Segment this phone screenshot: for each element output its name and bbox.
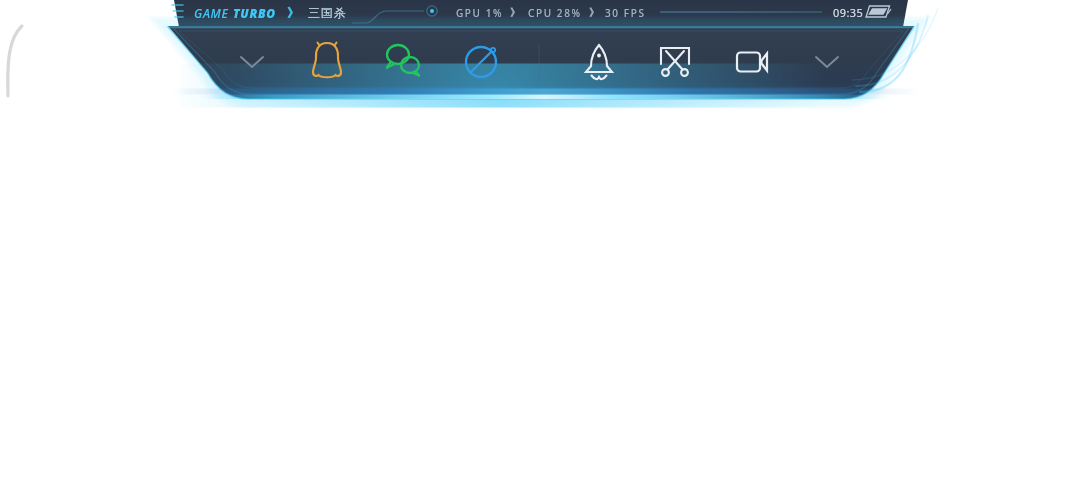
button[interactable]: WeChat — [383, 42, 423, 82]
button[interactable]: Screen record — [732, 42, 772, 82]
button[interactable]: Performance boost — [579, 42, 619, 82]
button[interactable]: Collapse right — [811, 46, 843, 78]
button[interactable]: QQ — [307, 42, 347, 82]
button[interactable]: Browser — [461, 42, 501, 82]
button[interactable]: Collapse left — [236, 46, 268, 78]
button[interactable]: Menu — [168, 0, 208, 27]
button[interactable]: Screenshot — [655, 42, 695, 82]
